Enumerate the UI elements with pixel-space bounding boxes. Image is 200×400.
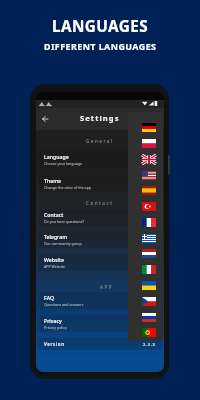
- staticText: General: [86, 138, 114, 144]
- staticText: 2.2.3: [143, 342, 156, 347]
- staticText: Privacy policy: [44, 325, 67, 330]
- button[interactable]: Language: [39, 151, 161, 168]
- staticText: Questions and answers: [44, 302, 84, 307]
- staticText: Our community group: [44, 241, 82, 246]
- button[interactable]: Choose language: [128, 245, 163, 261]
- staticText: APP Website: [44, 264, 66, 269]
- staticText: DIFFERENT LANGUAGES: [44, 40, 157, 52]
- button[interactable]: Choose language: [128, 182, 163, 198]
- button[interactable]: Choose language: [128, 277, 163, 293]
- button[interactable]: Choose language: [128, 119, 163, 135]
- button[interactable]: Choose language: [128, 309, 163, 325]
- button[interactable]: Contact: [39, 209, 161, 226]
- button[interactable]: Version: [39, 338, 161, 350]
- staticText: APP: [100, 284, 114, 290]
- button[interactable]: Telegram: [39, 231, 161, 248]
- button[interactable]: Choose language: [128, 261, 163, 277]
- staticText: Telegram: [44, 233, 68, 240]
- staticText: Contact: [86, 200, 114, 206]
- staticText: Version: [44, 341, 65, 347]
- staticText: Website: [44, 256, 64, 263]
- button[interactable]: Back: [37, 111, 53, 127]
- button[interactable]: Theme: [39, 175, 161, 192]
- button[interactable]: FAQ: [39, 292, 161, 309]
- button[interactable]: Choose language: [128, 167, 163, 183]
- staticText: Theme: [44, 177, 62, 184]
- button[interactable]: Choose language: [128, 230, 163, 246]
- staticText: Contact: [44, 211, 64, 218]
- staticText: FAQ: [44, 294, 54, 301]
- staticText: Privacy: [44, 317, 62, 324]
- button[interactable]: Website: [39, 254, 161, 271]
- staticText: Language: [44, 153, 69, 160]
- button[interactable]: Choose language: [128, 214, 163, 230]
- button[interactable]: Privacy: [39, 315, 161, 332]
- button[interactable]: Choose language: [128, 151, 163, 167]
- staticText: Change the color of the app: [44, 185, 92, 190]
- staticText: Settings: [80, 113, 120, 123]
- button[interactable]: Choose language: [128, 198, 163, 214]
- staticText: LANGUAGES: [52, 16, 149, 37]
- staticText: Do you have questions?: [44, 219, 84, 224]
- button[interactable]: Choose language: [128, 135, 163, 151]
- button[interactable]: Choose language: [128, 324, 163, 340]
- button[interactable]: Choose language: [128, 293, 163, 309]
- staticText: Choose your language: [44, 161, 83, 166]
